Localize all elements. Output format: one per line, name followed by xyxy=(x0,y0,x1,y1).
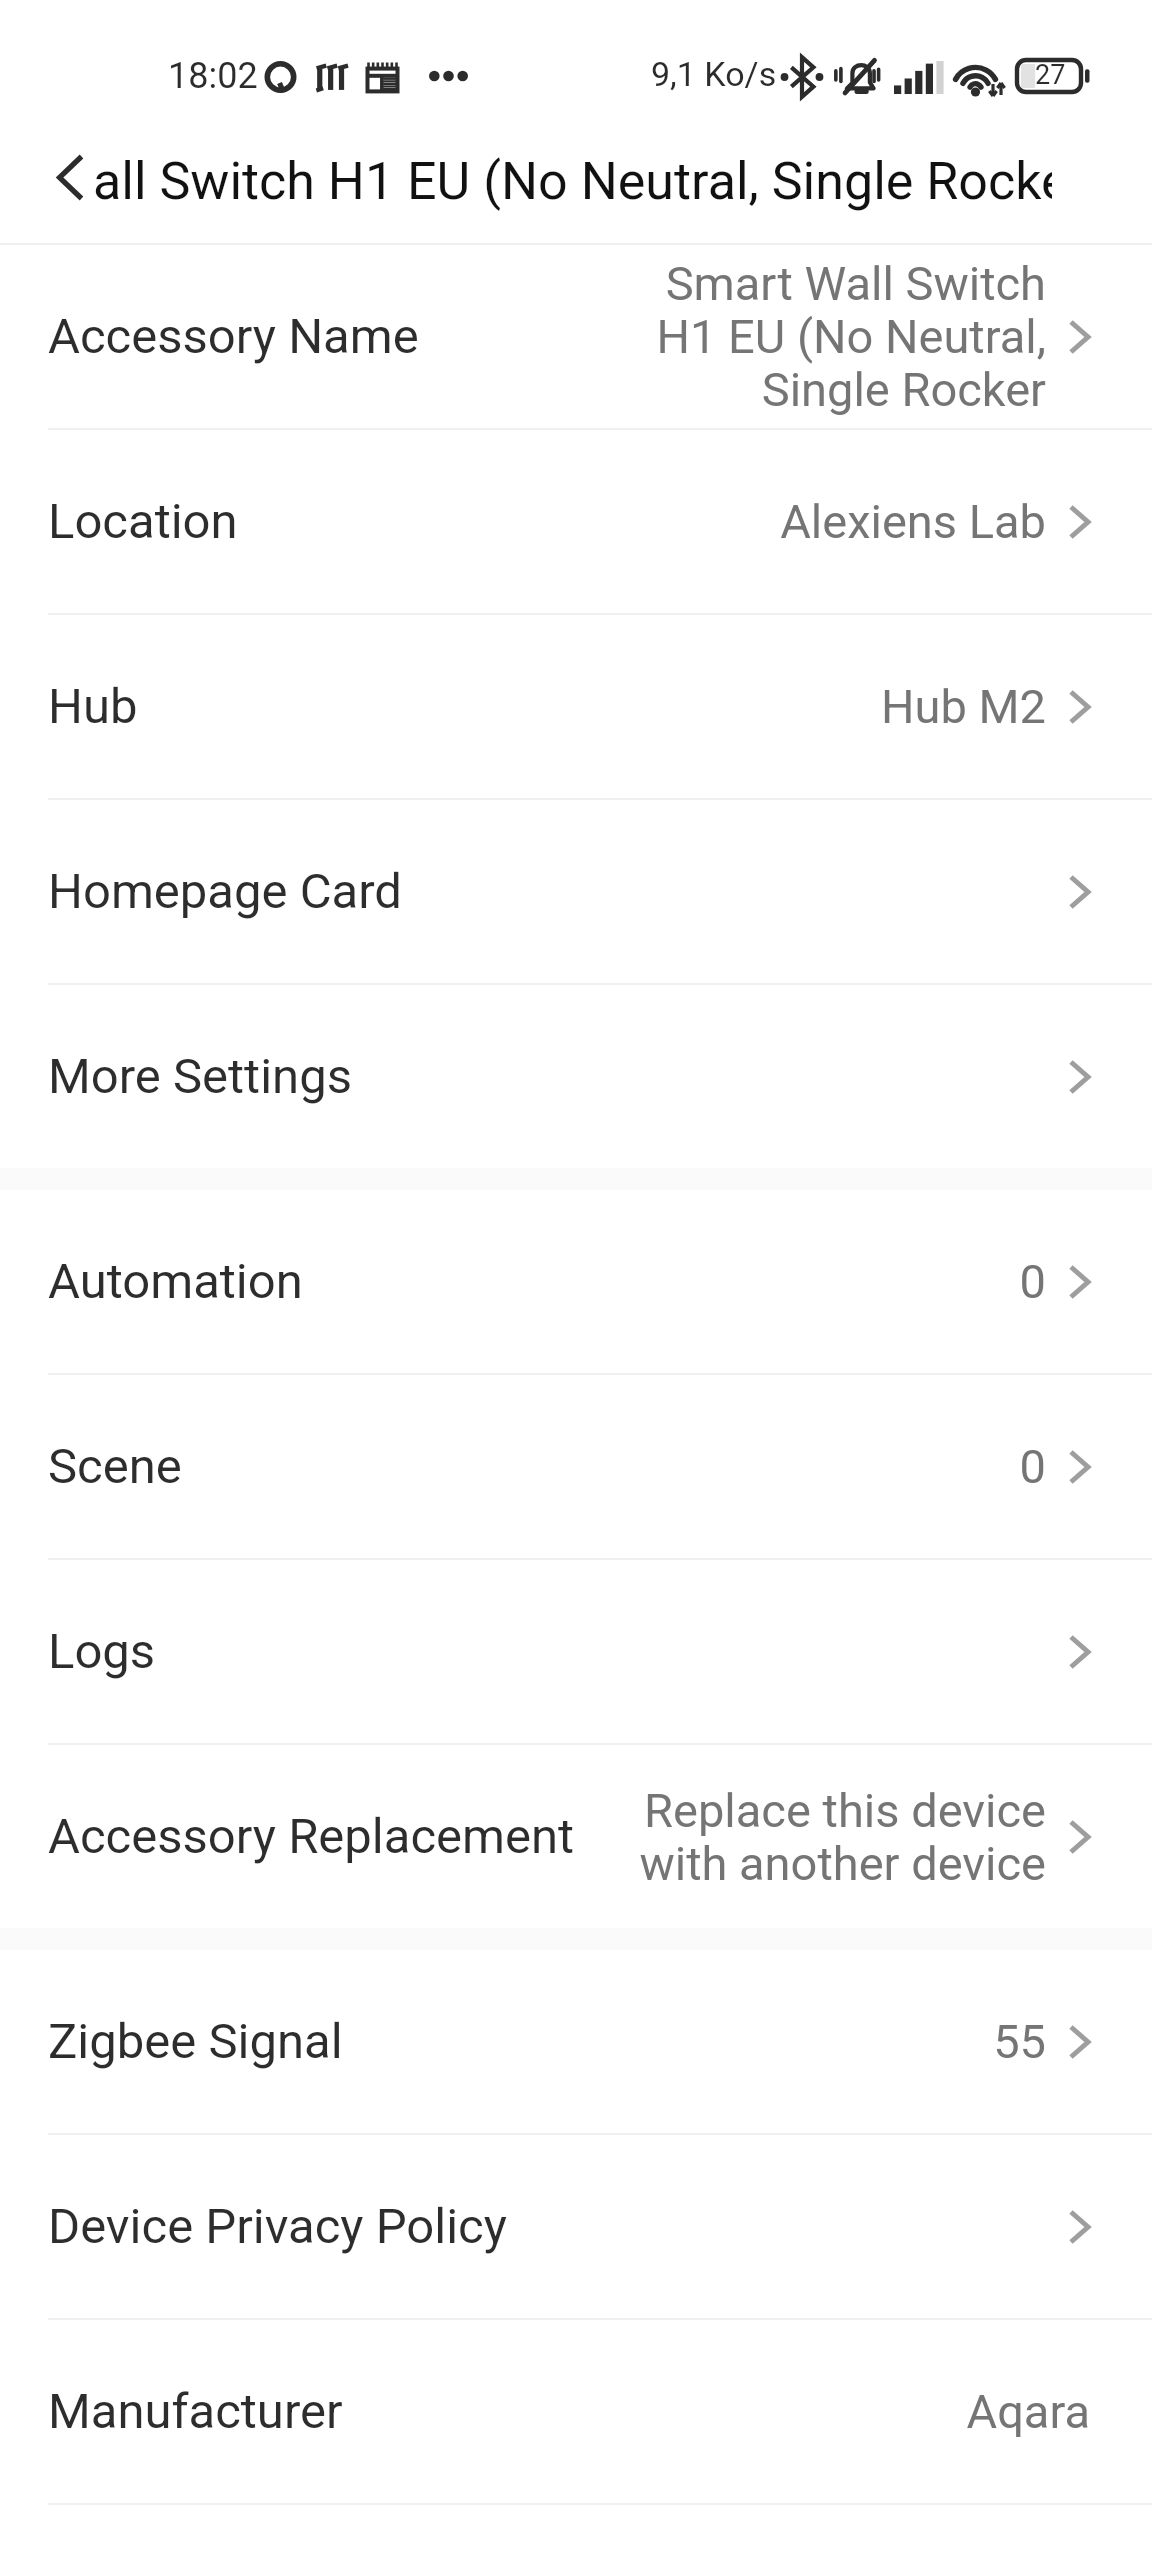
staticText: Aqara xyxy=(966,2384,1090,2439)
button[interactable]: Automation xyxy=(0,1190,1152,1373)
button[interactable]: Back xyxy=(40,139,100,215)
staticText: 9,1 Ko/s xyxy=(651,54,777,94)
button[interactable]: Accessory Replacement xyxy=(0,1745,1152,1928)
button[interactable]: Scene xyxy=(0,1375,1152,1558)
staticText: 0 xyxy=(1019,1254,1046,1309)
staticText: Manufacturer xyxy=(48,2383,343,2440)
staticText: 27 xyxy=(1035,59,1066,91)
staticText: Hub xyxy=(48,678,138,735)
staticText: Accessory Replacement xyxy=(48,1808,575,1865)
staticText: Logs xyxy=(48,1623,156,1680)
button[interactable]: Zigbee Signal xyxy=(0,1950,1152,2133)
button[interactable]: Logs xyxy=(0,1560,1152,1743)
staticText: Smart Wall Switch H1 EU (No Neutral, Sin… xyxy=(656,256,1046,417)
staticText: Accessory Name xyxy=(48,308,419,365)
staticText: Location xyxy=(48,493,238,550)
button[interactable]: Device Privacy Policy xyxy=(0,2135,1152,2318)
staticText: Homepage Card xyxy=(48,863,403,920)
staticText: Scene xyxy=(48,1438,182,1495)
button[interactable]: Homepage Card xyxy=(0,800,1152,983)
staticText: More Settings xyxy=(48,1048,352,1105)
staticText: Zigbee Signal xyxy=(48,2013,343,2070)
staticText: 18:02 xyxy=(168,55,258,97)
staticText: Alexiens Lab xyxy=(780,494,1046,549)
staticText: 55 xyxy=(993,2014,1046,2069)
staticText: Device Privacy Policy xyxy=(48,2198,507,2255)
staticText: 0 xyxy=(1019,1439,1046,1494)
button[interactable]: Accessory Name xyxy=(0,245,1152,428)
button[interactable]: Hub xyxy=(0,615,1152,798)
staticText: Hub M2 xyxy=(881,679,1046,734)
button[interactable]: Manufacturer xyxy=(0,2320,1152,2503)
staticText: Replace this device with another device xyxy=(639,1783,1046,1891)
button[interactable]: Location xyxy=(0,430,1152,613)
button[interactable]: More Settings xyxy=(0,985,1152,1168)
staticText: Automation xyxy=(48,1253,303,1310)
staticText: all Switch H1 EU (No Neutral, Single Roc… xyxy=(93,151,1052,212)
